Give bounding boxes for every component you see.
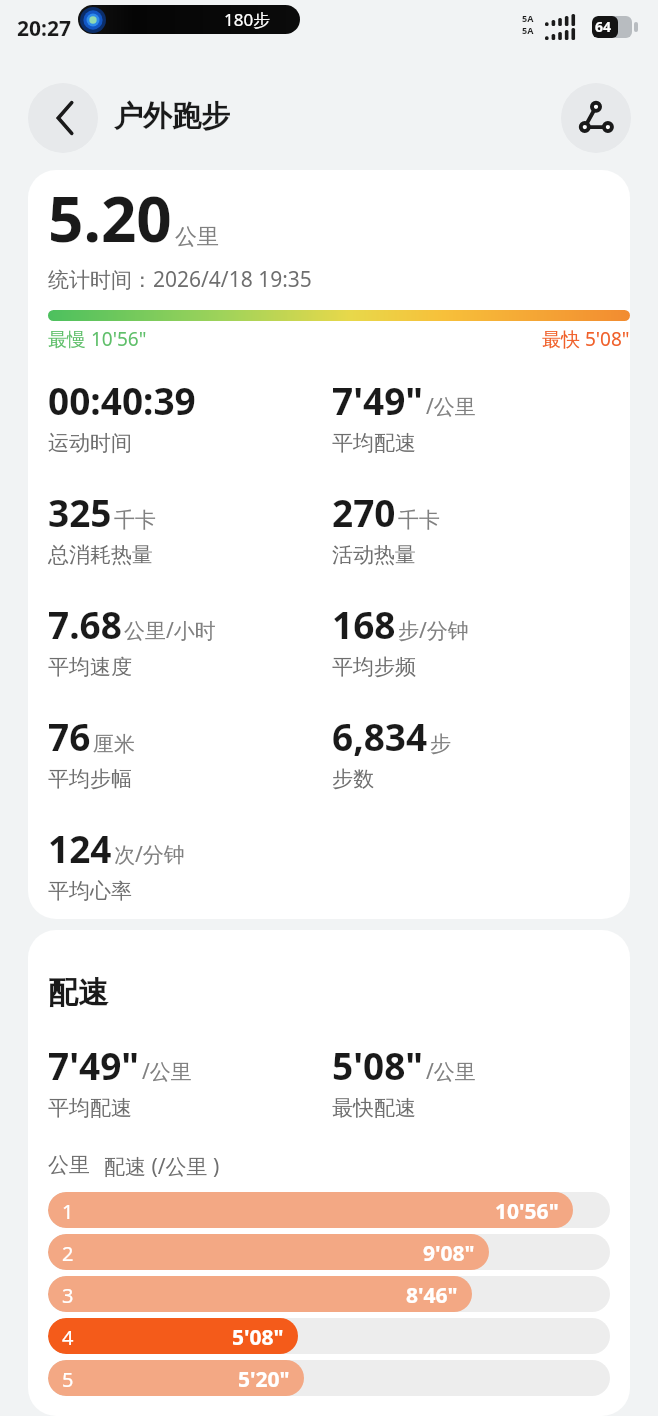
staticText: 活动热量: [332, 542, 416, 568]
staticText: 7'49": [332, 375, 424, 425]
button[interactable]: Share route: [561, 83, 631, 153]
staticText: 平均步频: [332, 654, 416, 680]
staticText: 270: [332, 487, 396, 537]
staticText: 5'08": [332, 1040, 424, 1090]
staticText: 3: [62, 1282, 74, 1309]
staticText: 千卡: [398, 507, 440, 533]
staticText: 6,834: [332, 711, 428, 761]
staticText: 平均心率: [48, 878, 132, 904]
staticText: 公里: [48, 1152, 90, 1178]
staticText: 平均配速: [48, 1095, 132, 1121]
staticText: 公里/小时: [124, 616, 216, 645]
staticText: 5: [62, 1366, 74, 1393]
staticText: 2: [62, 1240, 74, 1267]
staticText: 配速 (/公里 ): [104, 1152, 220, 1181]
staticText: 180步: [224, 8, 271, 31]
staticText: 运动时间: [48, 430, 132, 456]
staticText: 76: [48, 711, 91, 761]
staticText: 统计时间：2026/4/18 19:35: [48, 265, 312, 294]
staticText: 最快配速: [332, 1095, 416, 1121]
staticText: 平均配速: [332, 430, 416, 456]
button[interactable]: 3: [48, 1276, 610, 1312]
staticText: 8'46": [406, 1281, 458, 1310]
button[interactable]: 5: [48, 1360, 610, 1396]
staticText: 总消耗热量: [48, 542, 153, 568]
staticText: /公里: [142, 1057, 192, 1086]
staticText: /公里: [426, 392, 476, 421]
staticText: 步数: [332, 766, 374, 792]
staticText: 户外跑步: [114, 98, 230, 135]
staticText: 5'20": [238, 1365, 290, 1394]
button[interactable]: 2: [48, 1234, 610, 1270]
button[interactable]: 4: [48, 1318, 610, 1354]
staticText: 7'49": [48, 1040, 140, 1090]
staticText: 最快 5'08": [542, 326, 630, 352]
staticText: 次/分钟: [114, 840, 185, 869]
staticText: 1: [62, 1198, 74, 1225]
staticText: 平均速度: [48, 654, 132, 680]
staticText: 124: [48, 823, 112, 873]
staticText: 千卡: [114, 507, 156, 533]
staticText: 10'56": [495, 1197, 559, 1226]
staticText: 64: [595, 17, 612, 36]
staticText: 5.20: [48, 176, 172, 260]
staticText: 7.68: [48, 599, 122, 649]
staticText: 5'08": [232, 1323, 284, 1352]
staticText: 20:27: [17, 14, 71, 43]
staticText: 公里: [175, 223, 219, 251]
staticText: 最慢 10'56": [48, 326, 147, 352]
staticText: 325: [48, 487, 112, 537]
staticText: 168: [332, 599, 396, 649]
staticText: 4: [62, 1324, 74, 1351]
staticText: 配速: [48, 974, 108, 1012]
staticText: 步/分钟: [398, 616, 469, 645]
staticText: 00:40:39: [48, 375, 196, 425]
staticText: 9'08": [423, 1239, 475, 1268]
button[interactable]: 1: [48, 1192, 610, 1228]
button[interactable]: Back: [28, 83, 98, 153]
staticText: 5A: [522, 24, 534, 36]
staticText: 步: [430, 731, 451, 757]
staticText: 厘米: [93, 731, 135, 757]
staticText: /公里: [426, 1057, 476, 1086]
staticText: 5A: [522, 12, 534, 24]
staticText: 平均步幅: [48, 766, 132, 792]
